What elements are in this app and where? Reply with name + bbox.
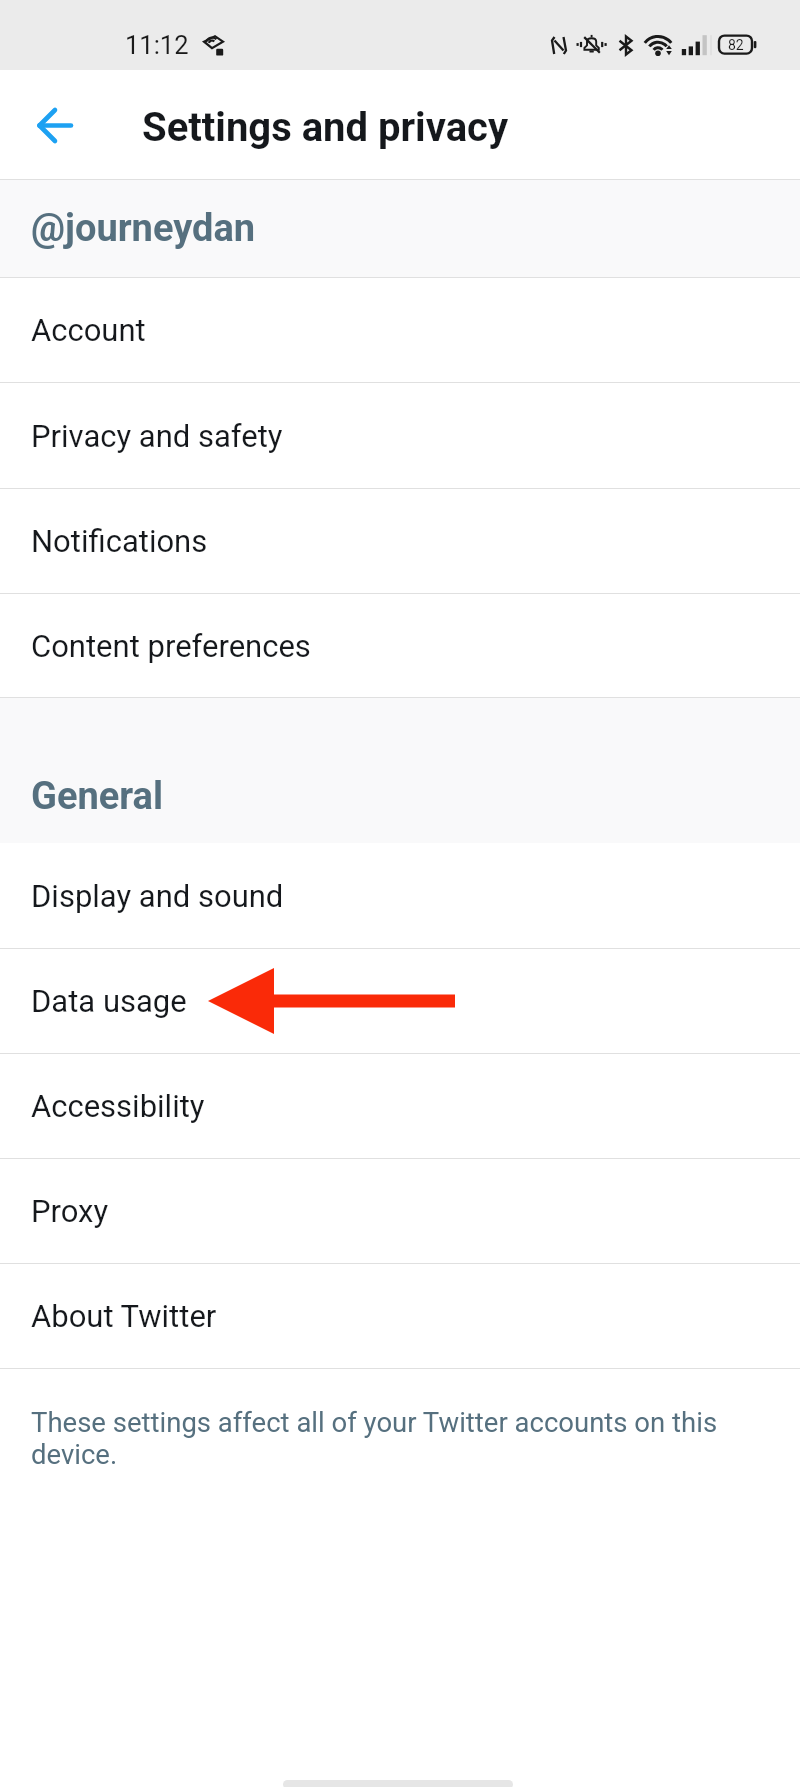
staticText: Settings and privacy — [142, 104, 509, 151]
staticText: Privacy and safety — [31, 418, 283, 454]
button[interactable]: Notifications — [0, 489, 800, 593]
button[interactable]: About Twitter — [0, 1264, 800, 1368]
button[interactable]: Account — [0, 278, 800, 382]
button[interactable]: Content preferences — [0, 594, 800, 697]
staticText: Data usage — [31, 983, 187, 1019]
staticText: Proxy — [31, 1193, 109, 1229]
button[interactable]: Display and sound — [0, 843, 800, 948]
staticText: Accessibility — [31, 1088, 205, 1124]
staticText: 82 — [728, 37, 744, 53]
staticText: These settings affect all of your Twitte… — [31, 1406, 738, 1471]
button[interactable]: Accessibility — [0, 1054, 800, 1158]
staticText: @journeydan — [31, 206, 256, 251]
staticText: 11:12 — [125, 30, 189, 60]
staticText: About Twitter — [31, 1298, 217, 1334]
button[interactable]: Privacy and safety — [0, 383, 800, 488]
button[interactable]: Proxy — [0, 1159, 800, 1263]
button[interactable]: Data usage — [0, 949, 800, 1053]
staticText: Account — [31, 312, 146, 348]
button[interactable]: Back — [7, 93, 72, 158]
staticText: Notifications — [31, 523, 208, 559]
staticText: General — [31, 774, 163, 819]
staticText: Content preferences — [31, 628, 311, 664]
staticText: Display and sound — [31, 878, 284, 914]
